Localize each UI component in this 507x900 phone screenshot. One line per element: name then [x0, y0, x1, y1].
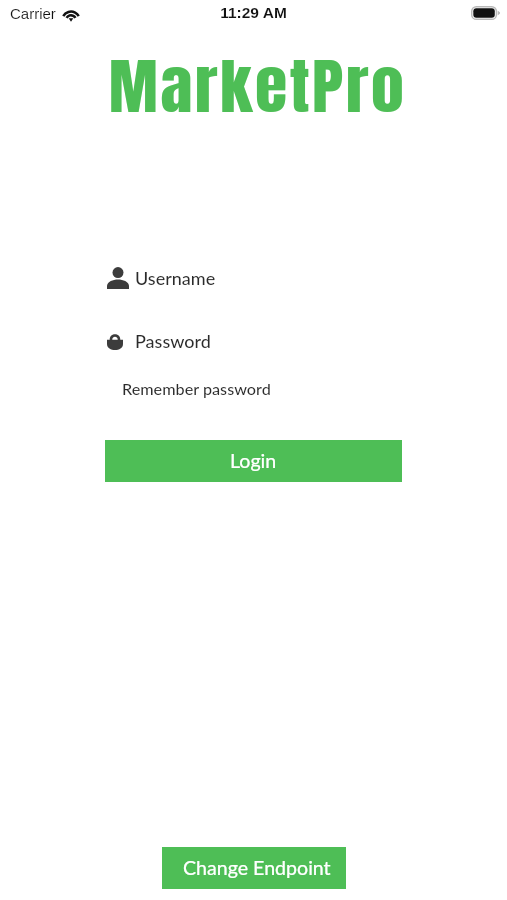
staticText: Change Endpoint — [183, 856, 331, 880]
staticText: Password — [135, 330, 211, 352]
other: Wi-Fi — [61, 5, 81, 20]
button[interactable]: Change Endpoint — [162, 847, 346, 889]
button[interactable]: Remember password — [122, 379, 271, 398]
staticText: 11:29 AM — [0, 4, 507, 21]
staticText: Carrier — [10, 5, 56, 22]
button[interactable]: Login — [105, 440, 402, 482]
staticText: MarketPro — [0, 41, 507, 131]
other: Battery — [471, 6, 500, 20]
staticText: Login — [230, 449, 277, 473]
button[interactable]: Password — [107, 329, 211, 353]
other: Username — [107, 267, 129, 289]
staticText: Username — [135, 267, 216, 289]
button[interactable]: Username — [107, 266, 216, 290]
other: Password — [107, 331, 123, 351]
